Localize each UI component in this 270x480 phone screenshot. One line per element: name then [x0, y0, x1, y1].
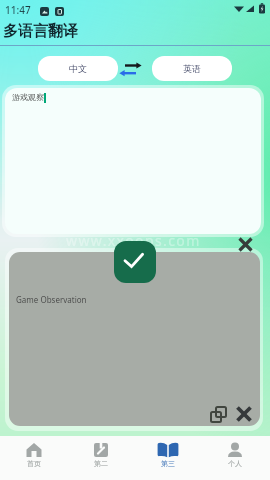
button[interactable]: [234, 404, 254, 424]
button[interactable]: [118, 58, 148, 80]
staticText: 中文: [69, 63, 87, 74]
staticText: 11:47: [5, 3, 31, 17]
button[interactable]: [208, 404, 229, 425]
staticText: 个人: [228, 459, 242, 468]
button[interactable]: 第三: [141, 438, 195, 480]
button[interactable]: 第二: [74, 438, 128, 480]
staticText: www.xxoops.com: [66, 231, 201, 250]
button[interactable]: [114, 241, 156, 283]
staticText: 第三: [161, 459, 175, 468]
staticText: Game Observation: [16, 294, 87, 305]
button[interactable]: 英语: [152, 56, 232, 81]
button[interactable]: [5, 88, 261, 234]
button[interactable]: 个人: [208, 438, 262, 480]
button[interactable]: [236, 235, 255, 254]
staticText: 首页: [27, 459, 41, 468]
staticText: 英语: [183, 63, 201, 74]
button[interactable]: 首页: [7, 438, 61, 480]
button[interactable]: 中文: [38, 56, 118, 81]
staticText: 第二: [94, 459, 108, 468]
staticText: 游戏观察: [12, 92, 44, 102]
staticText: 多语言翻译: [3, 22, 78, 41]
